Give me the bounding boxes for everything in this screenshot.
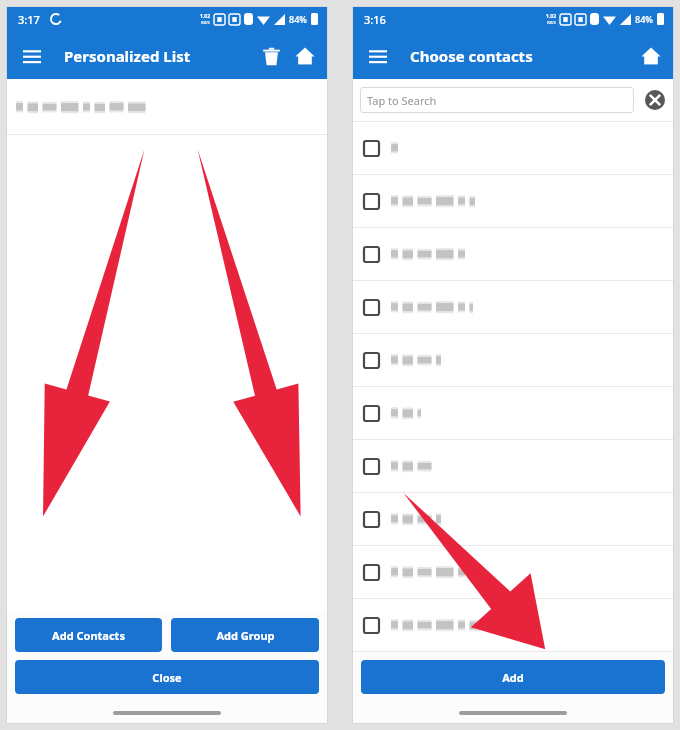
staticText: 84% xyxy=(635,13,653,25)
button[interactable]: Add Group xyxy=(171,618,319,652)
staticText: 1.02 xyxy=(200,13,210,20)
button[interactable]: Clear search xyxy=(644,89,666,111)
staticText: Tap to Search xyxy=(367,93,437,108)
button[interactable] xyxy=(352,546,674,598)
button[interactable] xyxy=(352,175,674,227)
button[interactable] xyxy=(352,387,674,439)
button[interactable]: Add Contacts xyxy=(15,618,162,652)
button[interactable] xyxy=(352,122,674,174)
button[interactable]: Tap to Search xyxy=(360,87,634,113)
staticText: 3:17 xyxy=(18,12,40,27)
staticText: Add Group xyxy=(216,628,275,643)
button[interactable] xyxy=(352,228,674,280)
button[interactable]: Close xyxy=(15,660,319,694)
button[interactable] xyxy=(352,334,674,386)
button[interactable]: Menu xyxy=(14,38,50,74)
button[interactable]: Home xyxy=(634,39,668,73)
staticText: Add xyxy=(502,670,524,685)
button[interactable] xyxy=(352,599,674,651)
staticText: 84% xyxy=(289,13,307,25)
staticText: Personalized List xyxy=(64,46,191,66)
staticText: Add Contacts xyxy=(52,628,125,643)
staticText: KB/S xyxy=(547,20,556,25)
button[interactable] xyxy=(352,440,674,492)
button[interactable]: Home xyxy=(288,39,322,73)
button[interactable] xyxy=(352,281,674,333)
staticText: Close xyxy=(152,670,182,685)
staticText: KB/S xyxy=(201,20,210,25)
button[interactable] xyxy=(352,493,674,545)
button[interactable]: Delete xyxy=(254,39,288,73)
staticText: Choose contacts xyxy=(410,46,533,66)
button[interactable]: Menu xyxy=(360,38,396,74)
button[interactable]: Add xyxy=(361,660,665,694)
staticText: 3:16 xyxy=(364,12,386,27)
staticText: 1.02 xyxy=(546,13,556,20)
